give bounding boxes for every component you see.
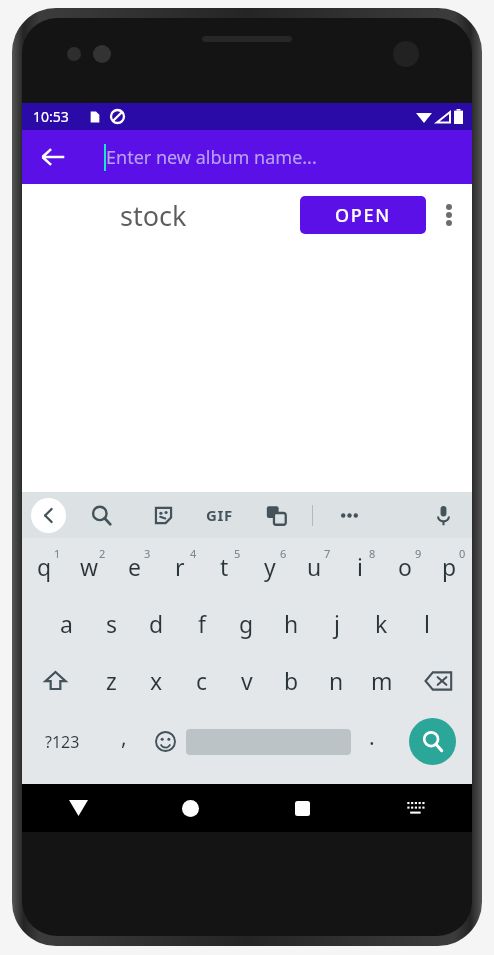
- staticText: 5: [234, 546, 241, 561]
- button[interactable]: Home: [134, 784, 246, 832]
- staticText: stock: [120, 197, 187, 234]
- staticText: w: [80, 551, 99, 582]
- button[interactable]: w: [67, 538, 112, 595]
- button[interactable]: e: [112, 538, 157, 595]
- staticText: .: [369, 723, 375, 752]
- staticText: 1: [54, 546, 61, 561]
- staticText: OPEN: [335, 203, 391, 228]
- button[interactable]: More options: [429, 192, 469, 238]
- staticText: k: [375, 608, 388, 639]
- button[interactable]: Search: [409, 718, 456, 765]
- staticText: d: [149, 608, 164, 639]
- button[interactable]: Collapse toolbar: [31, 498, 66, 533]
- button[interactable]: Voice input: [427, 499, 459, 531]
- staticText: l: [424, 608, 430, 639]
- button[interactable]: f: [179, 595, 224, 652]
- button[interactable]: v: [224, 652, 269, 709]
- button[interactable]: Emoji: [145, 709, 186, 774]
- button[interactable]: r: [157, 538, 202, 595]
- staticText: t: [220, 551, 229, 582]
- button[interactable]: o: [382, 538, 427, 595]
- staticText: p: [442, 551, 457, 582]
- staticText: 3: [144, 546, 151, 561]
- staticText: r: [175, 551, 185, 582]
- button[interactable]: Space: [186, 709, 351, 774]
- button[interactable]: ,: [103, 709, 145, 774]
- button[interactable]: z: [89, 652, 134, 709]
- button[interactable]: q: [22, 538, 67, 595]
- button[interactable]: y: [247, 538, 292, 595]
- staticText: Enter new album name...: [106, 145, 317, 170]
- staticText: 10:53: [33, 107, 69, 126]
- staticText: z: [106, 665, 117, 696]
- staticText: j: [334, 608, 340, 639]
- button[interactable]: ?123: [22, 709, 103, 774]
- button[interactable]: Stickers: [147, 499, 179, 531]
- button[interactable]: Shift: [22, 652, 89, 709]
- button[interactable]: OPEN: [300, 196, 426, 234]
- staticText: 7: [324, 546, 331, 561]
- button[interactable]: stock: [22, 184, 472, 246]
- staticText: 8: [369, 546, 376, 561]
- button[interactable]: Backspace: [404, 652, 472, 709]
- button[interactable]: c: [179, 652, 224, 709]
- staticText: y: [264, 551, 276, 582]
- button[interactable]: s: [89, 595, 134, 652]
- button[interactable]: Enter new album name...: [104, 130, 317, 184]
- button[interactable]: m: [359, 652, 404, 709]
- staticText: s: [106, 608, 118, 639]
- staticText: 4: [190, 546, 197, 561]
- button[interactable]: .: [351, 709, 392, 774]
- staticText: u: [307, 551, 322, 582]
- staticText: 6: [280, 546, 287, 561]
- staticText: n: [329, 665, 344, 696]
- staticText: q: [37, 551, 52, 582]
- button[interactable]: Translate: [260, 499, 292, 531]
- button[interactable]: u: [292, 538, 337, 595]
- button[interactable]: l: [404, 595, 449, 652]
- button[interactable]: Back: [22, 784, 134, 832]
- button[interactable]: d: [134, 595, 179, 652]
- staticText: o: [398, 551, 412, 582]
- staticText: 2: [99, 546, 106, 561]
- button[interactable]: b: [269, 652, 314, 709]
- button[interactable]: i: [337, 538, 382, 595]
- staticText: 0: [459, 546, 466, 561]
- button[interactable]: Recents: [246, 784, 359, 832]
- staticText: ?123: [45, 731, 80, 753]
- button[interactable]: g: [224, 595, 269, 652]
- staticText: ,: [121, 723, 127, 752]
- staticText: m: [371, 665, 393, 696]
- button[interactable]: More options: [333, 499, 365, 531]
- button[interactable]: j: [314, 595, 359, 652]
- staticText: h: [284, 608, 299, 639]
- staticText: f: [198, 608, 206, 639]
- staticText: c: [196, 665, 208, 696]
- button[interactable]: Switch keyboard: [359, 784, 472, 832]
- staticText: g: [239, 608, 254, 639]
- staticText: a: [60, 608, 73, 639]
- staticText: i: [357, 551, 363, 582]
- button[interactable]: Back: [30, 134, 76, 180]
- button[interactable]: x: [134, 652, 179, 709]
- staticText: e: [128, 551, 141, 582]
- button[interactable]: t: [202, 538, 247, 595]
- button[interactable]: a: [44, 595, 89, 652]
- staticText: 9: [415, 546, 422, 561]
- staticText: x: [150, 665, 163, 696]
- staticText: b: [284, 665, 299, 696]
- button[interactable]: Search: [85, 499, 117, 531]
- button[interactable]: GIF: [206, 505, 233, 525]
- button[interactable]: n: [314, 652, 359, 709]
- button[interactable]: h: [269, 595, 314, 652]
- staticText: v: [241, 665, 253, 696]
- button[interactable]: k: [359, 595, 404, 652]
- button[interactable]: p: [427, 538, 472, 595]
